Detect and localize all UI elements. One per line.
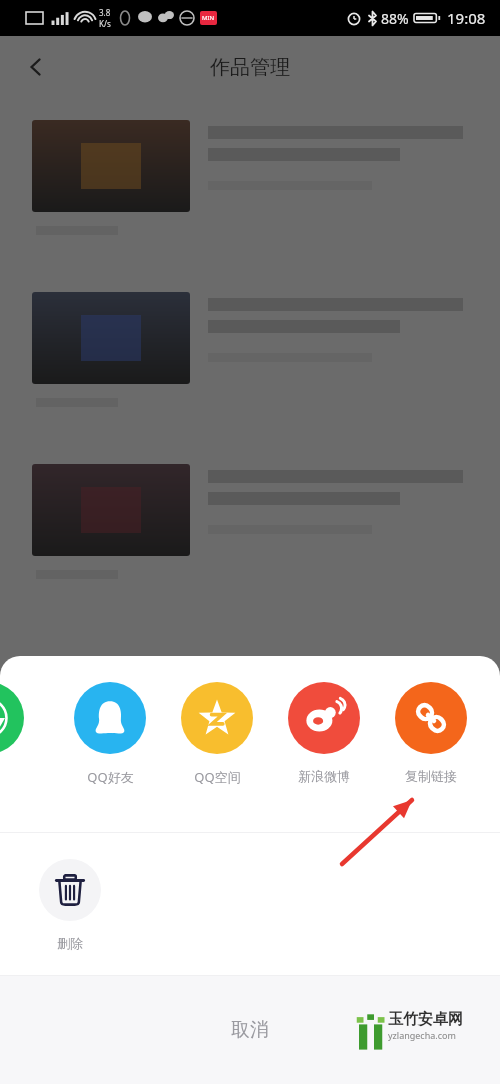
staticText: QQ好友: [87, 768, 134, 786]
button[interactable]: 新浪微博: [282, 682, 366, 784]
staticText: 新浪微博: [298, 768, 350, 784]
button[interactable]: QQ好友: [68, 682, 152, 786]
button[interactable]: Back: [14, 45, 58, 89]
staticText: 复制链接: [405, 768, 457, 784]
staticText: QQ空间: [194, 768, 241, 786]
staticText: MIN: [202, 14, 215, 22]
staticText: 删除: [57, 935, 83, 951]
staticText: yzlangecha.com: [388, 1029, 456, 1041]
button[interactable]: 删除: [28, 859, 112, 951]
button[interactable]: 取消: [0, 976, 500, 1084]
staticText: 玉竹安卓网: [388, 1010, 463, 1029]
button[interactable]: 复制链接: [389, 682, 473, 784]
staticText: 19:08: [447, 8, 486, 28]
button[interactable]: 朋友圈: [0, 682, 30, 784]
staticText: 取消: [231, 1018, 269, 1042]
staticText: 88%: [381, 9, 409, 28]
staticText: K/s: [99, 18, 111, 29]
staticText: 作品管理: [210, 55, 290, 80]
staticText: 3.8: [99, 7, 111, 18]
button[interactable]: QQ空间: [175, 682, 259, 786]
